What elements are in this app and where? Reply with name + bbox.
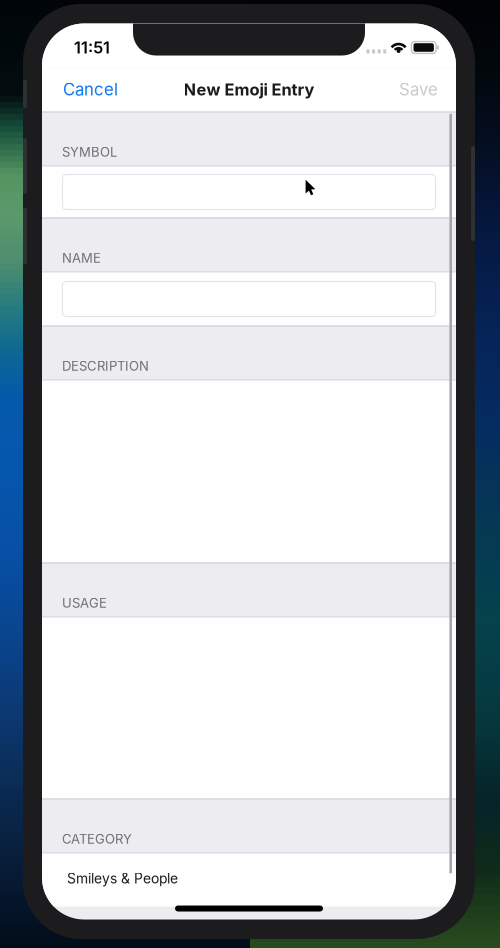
staticText: USAGE <box>62 595 107 611</box>
button[interactable]: Smileys & People <box>42 853 456 906</box>
staticText: 11:51 <box>74 38 110 57</box>
staticText: DESCRIPTION <box>62 358 149 374</box>
staticText: SYMBOL <box>62 144 117 160</box>
button[interactable]: Cancel <box>53 70 128 109</box>
staticText: New Emoji Entry <box>183 80 314 99</box>
staticText: Smileys & People <box>67 870 178 887</box>
staticText: CATEGORY <box>62 831 132 847</box>
staticText: Cancel <box>63 79 118 100</box>
button[interactable]: Save <box>389 70 448 109</box>
staticText: NAME <box>62 250 101 266</box>
staticText: Save <box>399 79 438 100</box>
